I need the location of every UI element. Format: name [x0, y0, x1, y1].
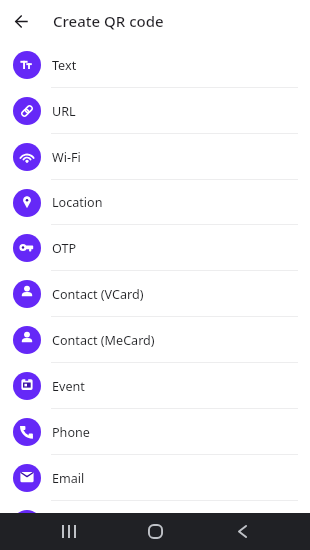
button[interactable]: Back — [5, 5, 37, 37]
staticText: URL — [52, 103, 76, 120]
staticText: Contact (VCard) — [52, 286, 144, 303]
button[interactable]: Back — [189, 513, 295, 550]
button[interactable]: Contact (VCard) — [0, 271, 310, 317]
button[interactable]: Location — [0, 180, 310, 225]
button[interactable]: Email — [0, 455, 310, 501]
button[interactable]: Text — [0, 42, 310, 88]
staticText: Event — [52, 378, 85, 395]
button[interactable]: Phone — [0, 409, 310, 455]
staticText: Create QR code — [53, 11, 164, 31]
button[interactable]: Contact (MeCard) — [0, 317, 310, 363]
button[interactable]: URL — [0, 88, 310, 134]
staticText: Contact (MeCard) — [52, 332, 155, 349]
button[interactable]: Recent apps — [17, 513, 121, 550]
button[interactable]: Wi-Fi — [0, 134, 310, 180]
staticText: Wi-Fi — [52, 149, 81, 166]
button[interactable]: Home — [121, 513, 189, 550]
staticText: Text — [52, 57, 77, 74]
staticText: OTP — [52, 240, 77, 257]
staticText: Email — [52, 470, 85, 487]
staticText: Location — [52, 194, 103, 211]
button[interactable]: Event — [0, 363, 310, 409]
staticText: SMS — [52, 515, 78, 532]
staticText: Phone — [52, 424, 90, 441]
button[interactable]: OTP — [0, 225, 310, 271]
button[interactable]: SMS — [0, 501, 310, 546]
